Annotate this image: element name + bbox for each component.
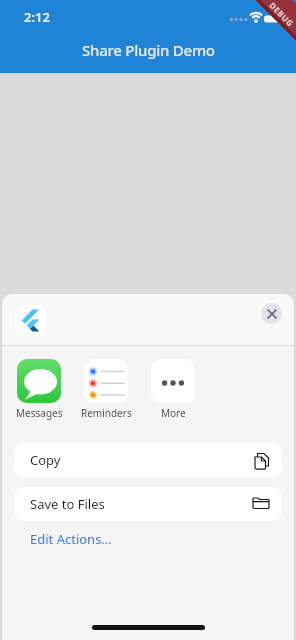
staticText: 2:12: [24, 8, 50, 26]
button[interactable]: Reminders: [74, 359, 138, 420]
button[interactable]: Copy: [14, 443, 282, 477]
button[interactable]: Edit Actions...: [30, 530, 112, 548]
button[interactable]: More: [141, 359, 205, 420]
staticText: Reminders: [81, 406, 132, 420]
staticText: Share Plugin Demo: [82, 40, 215, 60]
button[interactable]: Messages: [7, 359, 71, 420]
staticText: Save to Files: [30, 495, 105, 513]
button[interactable]: Save to Files: [14, 487, 282, 521]
staticText: More: [161, 406, 186, 420]
staticText: Messages: [16, 406, 63, 420]
staticText: Copy: [30, 451, 61, 469]
button[interactable]: [261, 303, 282, 324]
staticText: DEBUG: [267, 0, 296, 29]
